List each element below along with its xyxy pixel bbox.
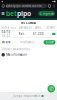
staticText: ▴▾ bbox=[51, 0, 53, 3]
button[interactable]: View detail bbox=[52, 33, 55, 35]
staticText: $1.200 bbox=[33, 32, 44, 36]
staticText: Transacción bbox=[18, 26, 32, 29]
staticText: Buscar bbox=[45, 40, 53, 44]
staticText: Tipo bbox=[10, 26, 16, 29]
button[interactable]: Más información bbox=[0, 52, 57, 58]
button[interactable]: Reload bbox=[47, 3, 52, 9]
staticText: Últimos movimientos bbox=[1, 47, 29, 51]
staticText: pipo bbox=[17, 9, 31, 18]
staticText: ‹ bbox=[3, 4, 4, 8]
staticText: bet bbox=[6, 9, 17, 18]
button[interactable]: Menu bbox=[0, 9, 6, 18]
staticText: 04/10 bbox=[1, 30, 10, 34]
staticText: 18:24 bbox=[1, 34, 10, 38]
staticText: Mostrar bbox=[1, 40, 10, 44]
staticText: Ingresar bbox=[43, 12, 54, 15]
staticText: Saldo bbox=[34, 26, 41, 29]
button[interactable]: Buscar bbox=[43, 40, 55, 44]
staticText: Juego responsable bbox=[13, 94, 40, 98]
staticText: Ret. bbox=[19, 32, 25, 36]
staticText: resultados bbox=[20, 40, 34, 44]
button[interactable]: Ingresar bbox=[38, 11, 55, 16]
staticText: MI CUENTA bbox=[21, 21, 36, 25]
button[interactable]: More options bbox=[52, 3, 56, 9]
button[interactable]: Back bbox=[1, 3, 5, 9]
staticText: ✆ bbox=[49, 86, 53, 92]
staticText: Fecha bbox=[1, 26, 8, 29]
button[interactable]: Chat on WhatsApp bbox=[47, 85, 55, 92]
staticText: Detalle bbox=[45, 26, 55, 29]
staticText: betpipo.com/mi-cuenta bbox=[9, 4, 41, 8]
staticText: Más información bbox=[6, 53, 27, 56]
